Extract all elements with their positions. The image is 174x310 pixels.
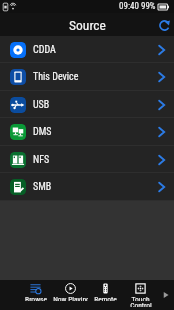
button[interactable]: CDDA <box>0 36 174 63</box>
button[interactable]: Refresh <box>155 16 173 34</box>
button[interactable]: DMS <box>0 118 174 146</box>
staticText: DMS <box>33 126 52 138</box>
button[interactable]: Now Playing <box>53 280 88 310</box>
staticText: Source <box>69 17 106 33</box>
staticText: Browse <box>25 295 47 301</box>
staticText: Remote <box>94 295 117 301</box>
button[interactable]: Remote <box>88 280 123 310</box>
button[interactable]: Touch <box>123 280 158 310</box>
staticText: 09:40 99% <box>119 1 156 12</box>
staticText: Touch <box>131 295 150 301</box>
staticText: Now Playing <box>53 295 88 301</box>
button[interactable]: NFS <box>0 146 174 173</box>
button[interactable]: Browse <box>18 280 53 310</box>
staticText: Control <box>130 301 152 307</box>
staticText: CDDA <box>33 44 56 56</box>
staticText: NFS <box>33 154 50 166</box>
button[interactable]: USB <box>0 91 174 118</box>
button[interactable]: SMB <box>0 173 174 201</box>
staticText: USB <box>33 99 50 111</box>
button[interactable]: This Device <box>0 63 174 91</box>
button[interactable]: More tabs <box>158 280 174 310</box>
staticText: This Device <box>33 71 79 83</box>
staticText: SMB <box>33 181 52 193</box>
